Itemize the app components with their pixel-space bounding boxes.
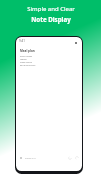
button[interactable]: Undo xyxy=(67,155,72,160)
staticText: Italian chicken xyxy=(20,55,33,57)
staticText: Note Display xyxy=(31,15,71,23)
staticText: Meal plan xyxy=(20,49,35,53)
staticText: Red & black beans xyxy=(20,64,36,66)
button[interactable]: Redo xyxy=(74,155,79,160)
staticText: Simple and Clear xyxy=(27,5,75,13)
staticText: 9:41 xyxy=(19,39,25,43)
staticText: Green spinach xyxy=(20,61,33,63)
staticText: Edited 9:41 xyxy=(25,157,36,160)
staticText: Veggies xyxy=(20,58,27,60)
